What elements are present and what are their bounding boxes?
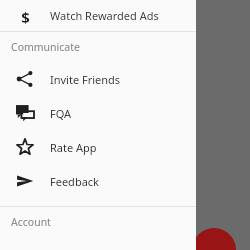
staticText: FQA (50, 106, 72, 121)
staticText: Invite Friends (50, 72, 121, 87)
other: Feedback (16, 172, 34, 190)
staticText: Watch Rewarded Ads (50, 8, 159, 23)
staticText: Rate App (50, 140, 97, 155)
staticText: $ (21, 7, 30, 25)
other: FQA (16, 104, 34, 122)
other: Invite Friends (16, 70, 34, 88)
button[interactable]: Invite Friends (0, 62, 196, 96)
button[interactable]: Add (192, 228, 236, 250)
button[interactable]: FQA (0, 96, 196, 130)
staticText: Communicate (11, 40, 80, 54)
other: Rate App (16, 138, 34, 156)
button[interactable]: Rate App (0, 130, 196, 164)
staticText: Feedback (50, 174, 99, 189)
staticText: Account (11, 215, 51, 229)
button[interactable]: $ (0, 0, 196, 31)
button[interactable]: Feedback (0, 164, 196, 198)
